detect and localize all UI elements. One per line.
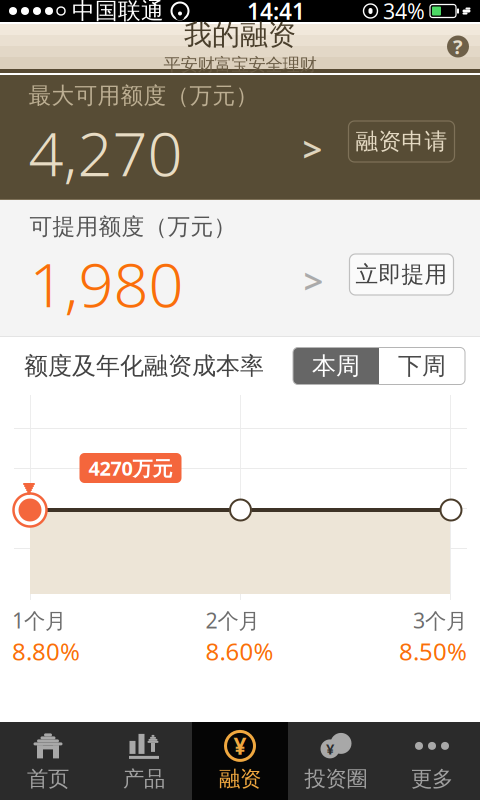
button[interactable]: 立即提用: [349, 254, 453, 295]
staticText: 下周: [398, 351, 446, 381]
staticText: 可提用额度（万元）: [29, 213, 236, 241]
button[interactable]: 可提用额度（万元）: [1, 200, 349, 337]
button[interactable]: 产品: [96, 722, 192, 800]
staticText: >: [302, 125, 322, 171]
staticText: 投资圈: [304, 766, 367, 792]
staticText: ?: [453, 33, 463, 60]
staticText: 更多: [411, 766, 453, 792]
button[interactable]: ¥: [192, 722, 288, 800]
staticText: 中国联通: [72, 0, 164, 25]
staticText: 1个月: [12, 606, 66, 634]
staticText: 34%: [383, 0, 425, 25]
button[interactable]: 下周: [379, 347, 465, 384]
staticText: 1,980: [29, 243, 183, 324]
button[interactable]: ¥: [288, 722, 384, 800]
staticText: 平安财富宝安全理财: [163, 54, 316, 75]
staticText: 融资: [219, 766, 261, 792]
staticText: 立即提用: [355, 261, 447, 288]
staticText: 额度及年化融资成本率: [24, 351, 264, 381]
button[interactable]: 融资申请: [348, 121, 454, 162]
button[interactable]: 本周: [293, 347, 379, 384]
staticText: 最大可用额度（万元）: [28, 82, 258, 110]
staticText: 本周: [312, 351, 360, 381]
staticText: 3个月: [413, 606, 467, 634]
staticText: 14:41: [247, 0, 305, 26]
staticText: 首页: [27, 766, 69, 792]
staticText: ¥: [326, 739, 334, 759]
staticText: >: [303, 257, 323, 303]
button[interactable]: 最大可用额度（万元）: [0, 75, 348, 200]
staticText: ¥: [233, 731, 246, 761]
staticText: 4,270: [28, 112, 182, 193]
button[interactable]: 首页: [0, 722, 96, 800]
staticText: 8.60%: [205, 635, 273, 667]
staticText: 8.50%: [399, 635, 467, 667]
staticText: 融资申请: [355, 128, 447, 155]
button[interactable]: 更多: [384, 722, 480, 800]
staticText: 我的融资: [184, 18, 296, 52]
staticText: 8.80%: [12, 635, 80, 667]
staticText: 2个月: [205, 606, 259, 634]
staticText: 4270万元: [88, 455, 172, 481]
staticText: 产品: [123, 766, 165, 792]
button[interactable]: 帮助: [436, 24, 480, 68]
